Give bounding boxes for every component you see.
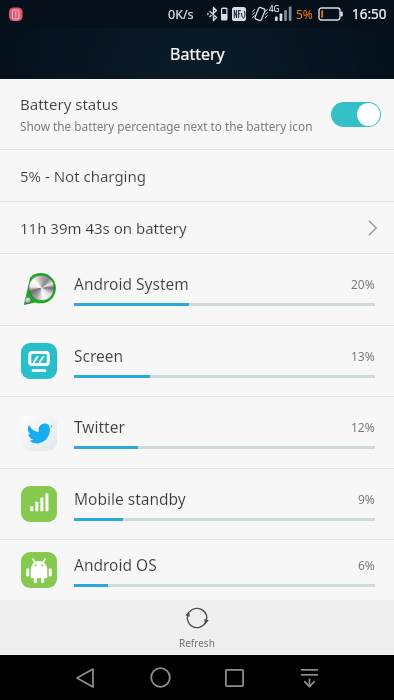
- staticText: 16:50: [352, 5, 387, 23]
- staticText: Mobile standby: [74, 488, 186, 509]
- button[interactable]: Back: [57, 655, 113, 700]
- staticText: 11h 39m 43s on battery: [20, 218, 368, 238]
- button[interactable]: Mobile standby: [0, 469, 394, 539]
- button[interactable]: 11h 39m 43s on battery: [0, 202, 394, 253]
- staticText: Screen: [74, 345, 124, 366]
- staticText: Battery: [170, 43, 225, 65]
- staticText: 13%: [351, 348, 375, 364]
- button[interactable]: 5% - Not charging: [0, 150, 394, 201]
- staticText: 12%: [351, 419, 375, 435]
- staticText: 9%: [358, 491, 375, 507]
- staticText: 0K/s: [168, 6, 194, 23]
- staticText: Refresh: [179, 636, 215, 650]
- button[interactable]: Battery status toggle: [331, 102, 381, 127]
- staticText: Twitter: [74, 416, 125, 437]
- button[interactable]: Home: [132, 655, 188, 700]
- staticText: 5%: [296, 6, 313, 22]
- staticText: 4G: [269, 3, 280, 14]
- button[interactable]: Refresh: [155, 600, 239, 650]
- staticText: Android System: [74, 273, 189, 294]
- button[interactable]: Screen: [0, 326, 394, 396]
- button[interactable]: Recents: [206, 655, 262, 700]
- staticText: 6%: [358, 557, 375, 573]
- button[interactable]: Twitter: [0, 397, 394, 468]
- staticText: 20%: [351, 276, 375, 292]
- button[interactable]: Battery status: [0, 79, 394, 149]
- staticText: Android OS: [74, 554, 157, 575]
- staticText: Show the battery percentage next to the …: [20, 118, 313, 134]
- button[interactable]: Android System: [0, 254, 394, 325]
- staticText: Battery status: [20, 94, 119, 114]
- button[interactable]: Android OS: [0, 540, 394, 600]
- staticText: 5% - Not charging: [20, 166, 146, 186]
- button[interactable]: Hide keyboard: [281, 655, 337, 700]
